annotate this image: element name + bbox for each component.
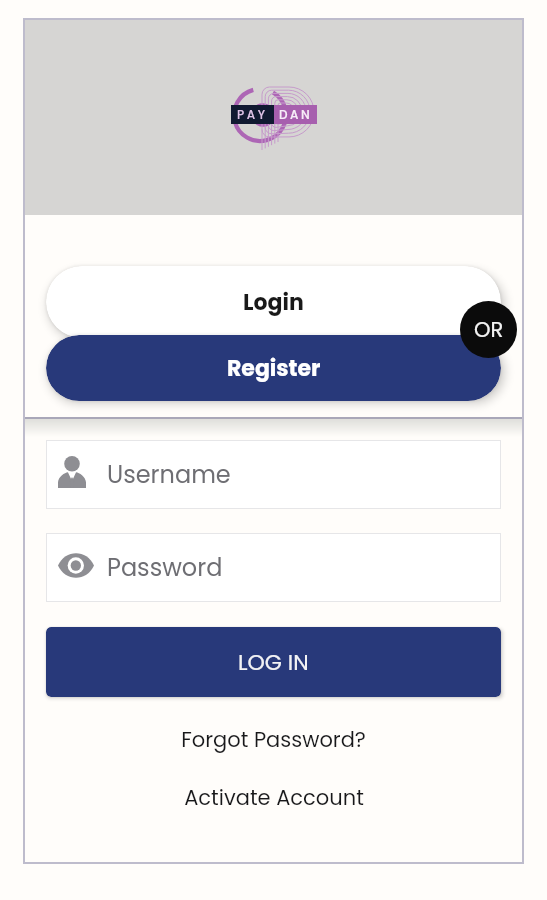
staticText: Forgot Password? <box>181 725 366 754</box>
button[interactable]: Login <box>46 266 501 338</box>
button[interactable]: LOG IN <box>46 627 501 697</box>
staticText: Activate Account <box>184 783 364 812</box>
staticText: LOG IN <box>238 647 309 678</box>
button[interactable]: Register <box>46 335 501 401</box>
other: Username <box>58 456 86 488</box>
button[interactable]: Activate Account <box>174 777 374 818</box>
button[interactable]: Show password <box>46 533 501 602</box>
button[interactable]: OR <box>460 301 517 358</box>
staticText: DAN <box>279 106 313 123</box>
staticText: Username <box>107 458 231 492</box>
staticText: OR <box>474 315 504 344</box>
button[interactable]: Username <box>46 440 501 509</box>
staticText: Password <box>107 551 223 585</box>
staticText: Register <box>227 353 321 384</box>
staticText: Login <box>243 287 304 318</box>
button[interactable]: Forgot Password? <box>171 719 376 760</box>
other: Show password <box>58 554 94 577</box>
staticText: PAY <box>237 106 268 123</box>
